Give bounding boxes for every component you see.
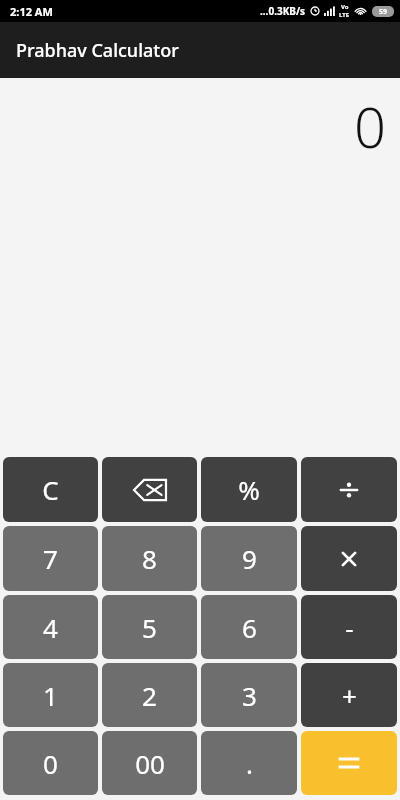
- button[interactable]: Divide: [301, 457, 397, 522]
- staticText: +: [342, 678, 357, 713]
- staticText: 00: [135, 746, 165, 781]
- staticText: -: [345, 610, 354, 645]
- button[interactable]: 2: [102, 663, 197, 727]
- button[interactable]: 0: [3, 731, 98, 795]
- staticText: Vo: [341, 3, 349, 11]
- button[interactable]: 1: [3, 663, 98, 727]
- staticText: ...0.3KB/s: [260, 4, 306, 18]
- button[interactable]: 7: [3, 526, 98, 591]
- staticText: 8: [142, 541, 157, 576]
- button[interactable]: Backspace: [102, 457, 197, 522]
- button[interactable]: Equals: [301, 731, 397, 795]
- staticText: 2: [142, 678, 157, 713]
- staticText: 6: [242, 610, 257, 645]
- staticText: C: [42, 472, 59, 507]
- button[interactable]: .: [201, 731, 297, 795]
- staticText: 0: [354, 88, 386, 164]
- button[interactable]: 4: [3, 595, 98, 659]
- button[interactable]: 6: [201, 595, 297, 659]
- button[interactable]: %: [201, 457, 297, 522]
- staticText: LTE: [339, 11, 350, 19]
- staticText: Prabhav Calculator: [16, 38, 179, 63]
- staticText: 0: [43, 746, 58, 781]
- button[interactable]: -: [301, 595, 397, 659]
- staticText: 9: [242, 541, 257, 576]
- staticText: 5: [142, 610, 157, 645]
- button[interactable]: Multiply: [301, 526, 397, 591]
- button[interactable]: +: [301, 663, 397, 727]
- staticText: 1: [43, 678, 58, 713]
- button[interactable]: 3: [201, 663, 297, 727]
- button[interactable]: 5: [102, 595, 197, 659]
- staticText: 2:12 AM: [10, 4, 53, 19]
- staticText: 3: [242, 678, 257, 713]
- button[interactable]: C: [3, 457, 98, 522]
- staticText: 59: [379, 7, 388, 17]
- staticText: 7: [43, 541, 58, 576]
- button[interactable]: 9: [201, 526, 297, 591]
- staticText: .: [246, 746, 253, 781]
- staticText: %: [238, 472, 260, 507]
- button[interactable]: 00: [102, 731, 197, 795]
- staticText: 4: [43, 610, 58, 645]
- button[interactable]: 8: [102, 526, 197, 591]
